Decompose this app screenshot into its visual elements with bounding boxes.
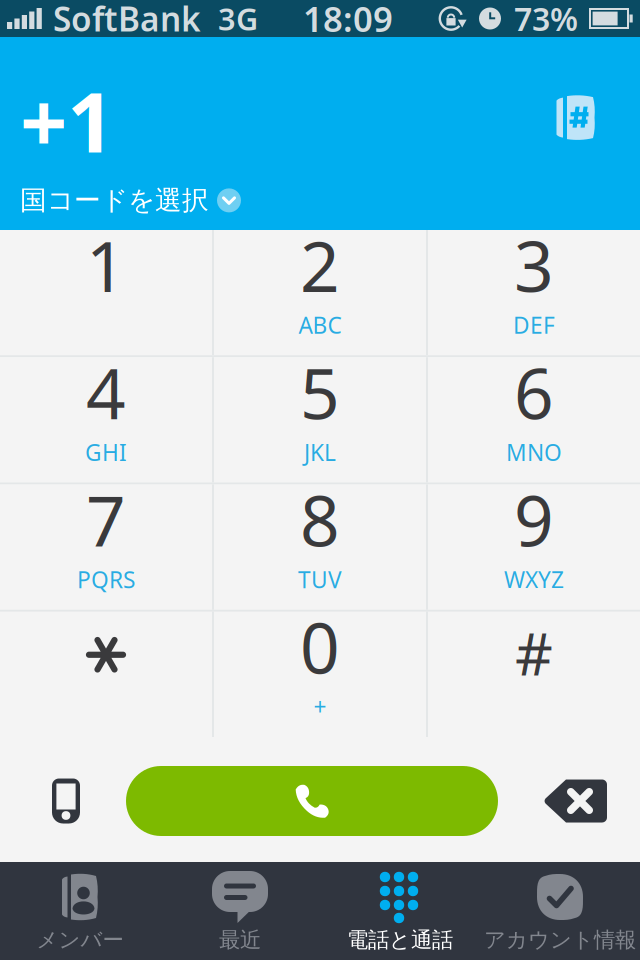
staticText: 国コードを選択	[20, 184, 209, 217]
staticText: アカウント情報	[484, 927, 636, 953]
staticText: 3	[514, 219, 554, 311]
staticText: 73%	[514, 0, 578, 40]
button[interactable]: 最近	[160, 862, 320, 960]
staticText: 18:09	[303, 0, 393, 41]
staticText: MNO	[506, 437, 562, 467]
staticText: WXYZ	[504, 564, 564, 594]
button[interactable]: アカウント情報	[480, 862, 640, 960]
button[interactable]: 1	[0, 230, 212, 355]
staticText: DEF	[513, 310, 555, 340]
staticText: 2	[300, 219, 340, 311]
button[interactable]: 7	[0, 484, 212, 610]
staticText: 1	[86, 219, 126, 311]
staticText: 7	[86, 473, 126, 566]
staticText: #	[515, 614, 553, 692]
staticText: ABC	[298, 310, 341, 340]
button[interactable]: Contacts with numbers	[544, 84, 612, 156]
staticText: 電話と通話	[347, 927, 453, 953]
button[interactable]	[0, 612, 212, 737]
staticText: GHI	[85, 437, 127, 467]
staticText: 8	[300, 473, 340, 566]
button[interactable]: Delete	[534, 769, 618, 832]
button[interactable]: 2	[214, 230, 426, 355]
staticText: 0	[300, 601, 340, 693]
button[interactable]: Call with mobile	[42, 768, 90, 833]
staticText: 9	[514, 473, 554, 566]
staticText: SoftBank	[53, 0, 201, 41]
button[interactable]: 9	[428, 484, 640, 610]
button[interactable]: #	[428, 612, 640, 737]
staticText: PQRS	[77, 564, 135, 594]
button[interactable]: Call	[126, 766, 498, 836]
staticText: メンバー	[36, 927, 123, 953]
button[interactable]: 8	[214, 484, 426, 610]
button[interactable]: 電話と通話	[320, 862, 480, 960]
staticText: +1	[20, 66, 114, 175]
staticText: 4	[86, 346, 126, 438]
button[interactable]: 国コードを選択	[20, 183, 282, 217]
button[interactable]: 6	[428, 357, 640, 482]
staticText: +	[313, 692, 326, 722]
button[interactable]: メンバー	[0, 862, 160, 960]
staticText: 5	[300, 346, 340, 438]
button[interactable]: 3	[428, 230, 640, 355]
staticText: 3G	[218, 0, 258, 39]
button[interactable]: 5	[214, 357, 426, 482]
button[interactable]: 4	[0, 357, 212, 482]
staticText: 最近	[219, 927, 261, 953]
button[interactable]: 0	[214, 612, 426, 737]
staticText: JKL	[304, 437, 336, 467]
staticText: TUV	[298, 564, 342, 594]
staticText: 6	[514, 346, 554, 438]
